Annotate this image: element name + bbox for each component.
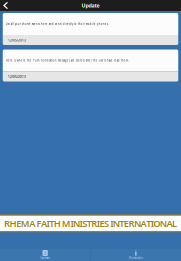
button[interactable]: List all your church events here and sen… xyxy=(3,13,178,45)
staticText: 12/05/2013 xyxy=(8,37,26,43)
staticText: RHEMA FAITH MINISTRIES INTERNATIONAL xyxy=(4,217,177,230)
button[interactable]: Here is where the Push notification mess… xyxy=(3,49,178,81)
staticText: Here is where the Push notification mess… xyxy=(6,59,129,62)
staticText: 12/05/2013 xyxy=(8,74,26,79)
button[interactable]: Reminder xyxy=(91,249,181,261)
staticText: List all your church events here and sen… xyxy=(6,22,109,26)
staticText: Update xyxy=(40,256,50,260)
staticText: Update xyxy=(81,2,99,9)
button[interactable]: Back xyxy=(0,0,14,11)
button[interactable]: Update xyxy=(0,249,90,261)
staticText: Reminder xyxy=(129,256,143,260)
